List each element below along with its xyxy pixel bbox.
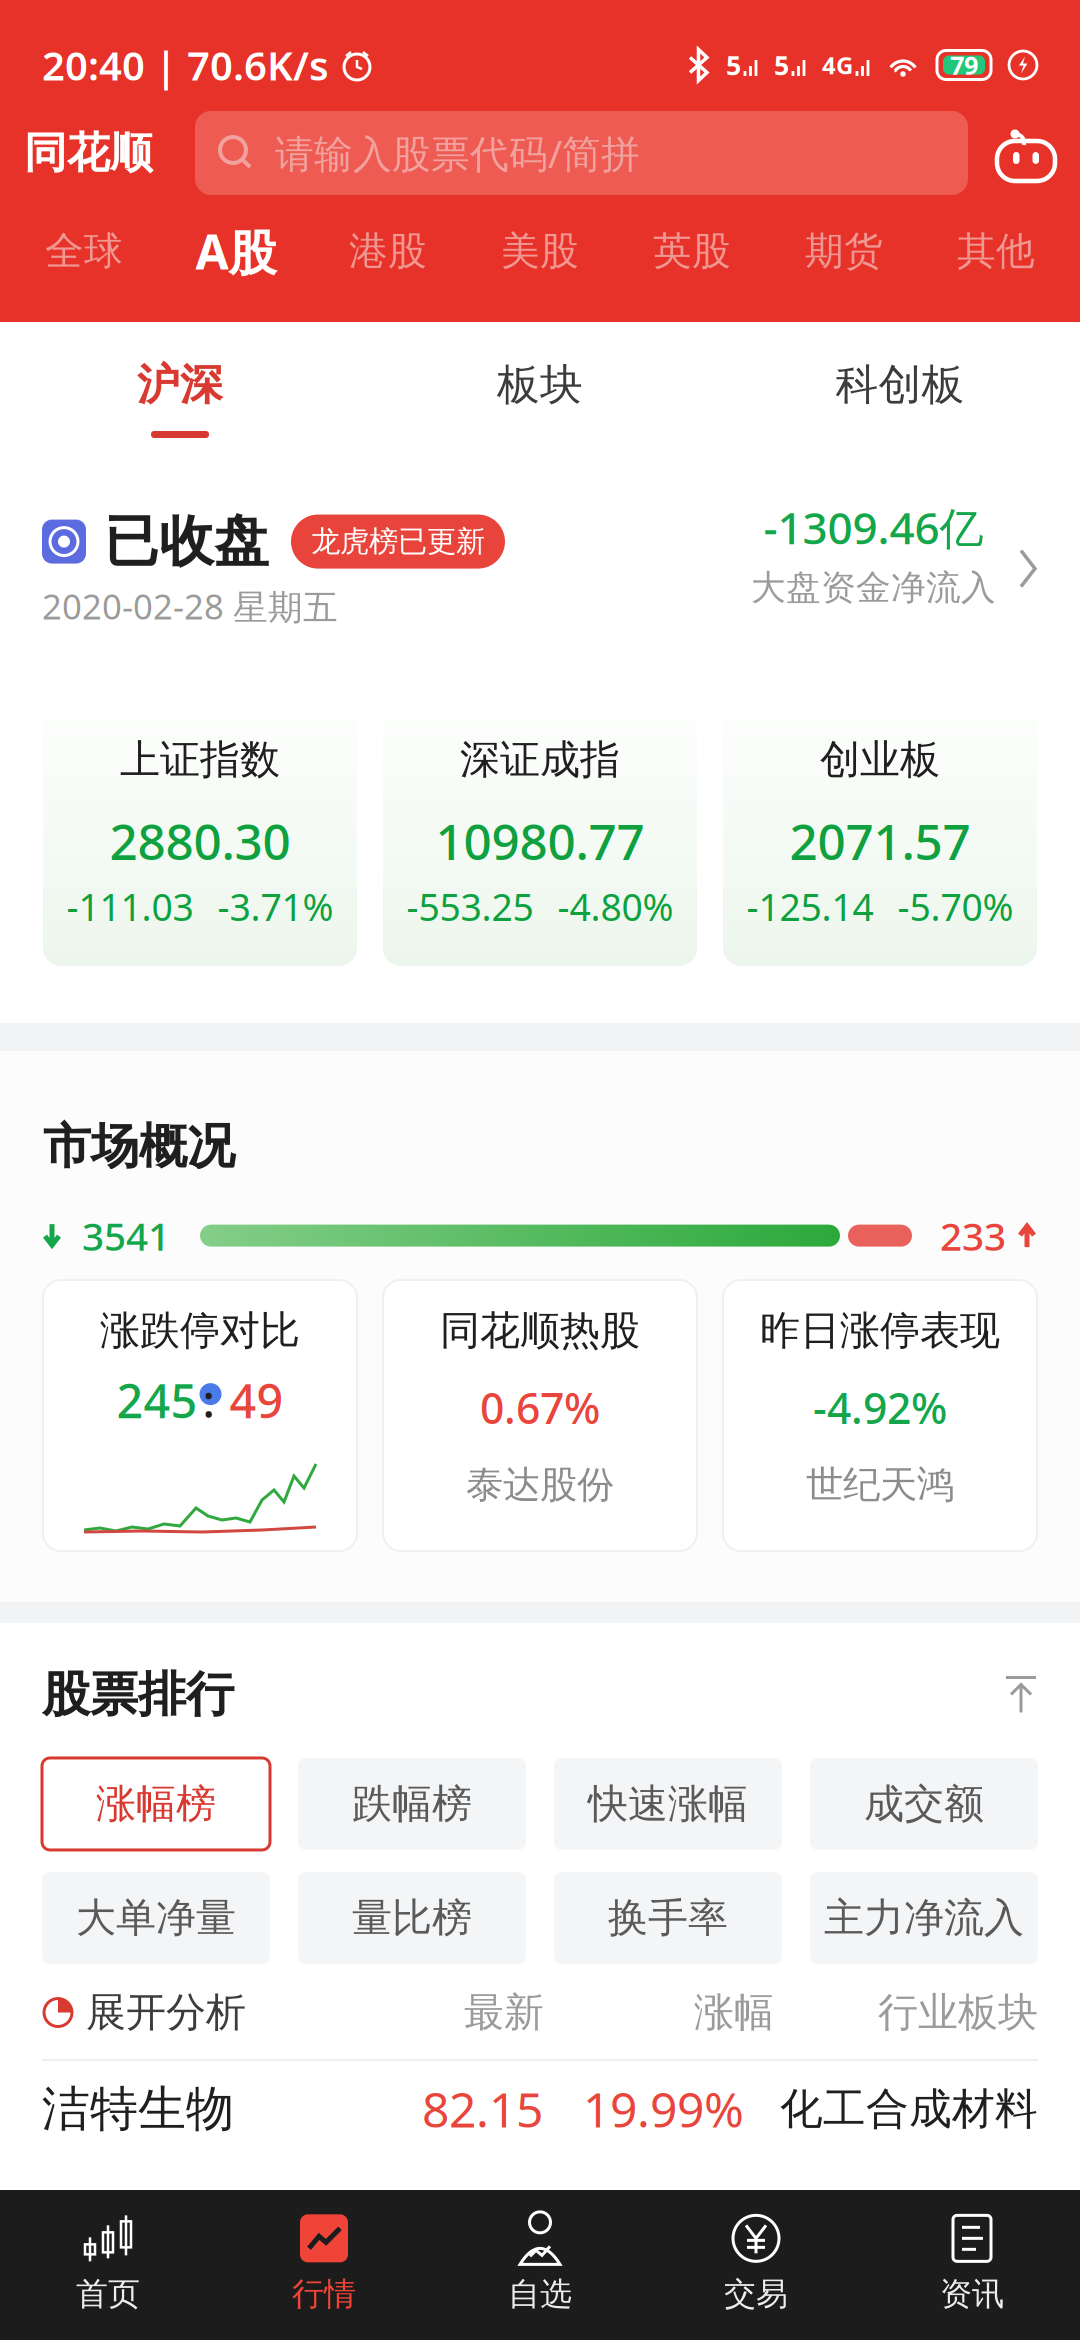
staticText: 期货 — [805, 227, 883, 275]
staticText: A股 — [195, 219, 276, 283]
staticText: 涨幅榜 — [96, 1779, 216, 1828]
button[interactable]: 量比榜 — [298, 1872, 526, 1964]
button[interactable]: 主力净流入 — [810, 1872, 1038, 1964]
staticText: 化工合成材料 — [780, 2083, 1038, 2135]
staticText: 洁特生物 — [42, 2079, 234, 2138]
staticText: 美股 — [501, 227, 579, 275]
staticText: 创业板 — [820, 735, 940, 784]
staticText: 已收盘 — [104, 508, 269, 575]
button[interactable]: 快速涨幅 — [554, 1758, 782, 1850]
staticText: 79 — [950, 48, 978, 82]
button[interactable]: 最新 — [464, 1988, 544, 2037]
staticText: 同花顺 — [24, 127, 153, 179]
staticText: 快速涨幅 — [588, 1779, 748, 1828]
staticText: -3.71% — [217, 882, 333, 931]
button[interactable]: 沪深 — [0, 322, 360, 440]
button[interactable]: 行业板块 — [878, 1988, 1038, 2037]
staticText: 同花顺热股 — [440, 1306, 640, 1355]
button[interactable]: 交易 — [648, 2190, 864, 2340]
staticText: 主力净流入 — [824, 1893, 1024, 1942]
staticText: 成交额 — [864, 1779, 984, 1828]
staticText: -5.70% — [897, 882, 1013, 931]
staticText: 全球 — [45, 227, 123, 275]
staticText: 19.99% — [583, 2077, 744, 2141]
button[interactable]: -1309.46亿 — [751, 513, 1038, 624]
staticText: 涨幅 — [694, 1988, 774, 2037]
button[interactable]: 板块 — [360, 322, 720, 440]
button[interactable]: 涨幅 — [694, 1988, 774, 2037]
button[interactable]: 科创板 — [720, 322, 1080, 440]
staticText: 82.15 — [422, 2077, 543, 2141]
staticText: 233 — [940, 1210, 1006, 1261]
staticText: 港股 — [349, 227, 427, 275]
staticText: -111.03 — [66, 882, 193, 931]
button[interactable]: 全球 — [8, 223, 160, 279]
button[interactable]: 涨跌停对比 — [43, 1280, 357, 1551]
staticText: 沪深 — [137, 359, 223, 411]
staticText: 0.67% — [480, 1379, 600, 1436]
button[interactable]: 跌幅榜 — [298, 1758, 526, 1850]
staticText: 2020-02-28 星期五 — [42, 583, 338, 629]
button[interactable]: 英股 — [616, 223, 768, 279]
staticText: -1309.46亿 — [763, 498, 983, 556]
button[interactable]: A股 — [160, 223, 312, 279]
staticText: 涨跌停对比 — [100, 1306, 300, 1355]
staticText: 展开分析 — [86, 1988, 246, 2037]
button[interactable]: 美股 — [464, 223, 616, 279]
staticText: 5 — [726, 47, 741, 83]
button[interactable]: 龙虎榜已更新 — [291, 515, 505, 569]
staticText: 龙虎榜已更新 — [311, 524, 485, 560]
staticText: 大盘资金净流入 — [751, 566, 996, 609]
staticText: 昨日涨停表现 — [760, 1306, 1000, 1355]
button[interactable]: 其他 — [920, 223, 1072, 279]
staticText: 49 — [229, 1369, 283, 1431]
button[interactable]: 首页 — [0, 2190, 216, 2340]
staticText: 泰达股份 — [466, 1462, 614, 1508]
staticText: 行业板块 — [878, 1988, 1038, 2037]
button[interactable]: 昨日涨停表现 — [723, 1280, 1037, 1551]
staticText: 最新 — [464, 1988, 544, 2037]
staticText: 交易 — [724, 2274, 788, 2314]
staticText: 其他 — [957, 227, 1035, 275]
staticText: 深证成指 — [460, 735, 620, 784]
button[interactable]: 涨幅榜 — [42, 1758, 270, 1850]
button[interactable]: 换手率 — [554, 1872, 782, 1964]
staticText: 上证指数 — [120, 735, 280, 784]
staticText: -553.25 — [406, 882, 533, 931]
staticText: 市场概况 — [43, 1117, 235, 1176]
staticText: 行情 — [292, 2274, 356, 2314]
staticText: 股票排行 — [42, 1665, 234, 1724]
button[interactable]: 期货 — [768, 223, 920, 279]
button[interactable]: 行情 — [216, 2190, 432, 2340]
staticText: 2071.57 — [789, 808, 970, 874]
staticText: 3541 — [82, 1210, 170, 1261]
staticText: 4G — [822, 49, 853, 81]
staticText: 大单净量 — [76, 1893, 236, 1942]
staticText: 科创板 — [835, 359, 964, 411]
button[interactable]: 智能助手 — [994, 124, 1058, 182]
staticText: 世纪天鸿 — [806, 1462, 954, 1508]
button[interactable]: 请输入股票代码/简拼 — [195, 111, 968, 195]
staticText: 20:40 | 70.6K/s — [42, 38, 329, 91]
staticText: 5 — [774, 47, 789, 83]
staticText: 板块 — [497, 359, 583, 411]
button[interactable]: 展开分析 — [42, 1988, 246, 2037]
staticText: 首页 — [76, 2274, 140, 2314]
staticText: -4.92% — [813, 1379, 947, 1436]
staticText: 跌幅榜 — [352, 1779, 472, 1828]
button[interactable]: 成交额 — [810, 1758, 1038, 1850]
button[interactable]: 深证成指 — [383, 683, 697, 966]
button[interactable]: 上证指数 — [43, 683, 357, 966]
button[interactable]: 自选 — [432, 2190, 648, 2340]
button[interactable]: 港股 — [312, 223, 464, 279]
button[interactable]: 大单净量 — [42, 1872, 270, 1964]
button[interactable]: 同花顺热股 — [383, 1280, 697, 1551]
staticText: 自选 — [508, 2274, 572, 2314]
button[interactable]: 资讯 — [864, 2190, 1080, 2340]
staticText: 2880.30 — [109, 808, 290, 874]
button[interactable]: 创业板 — [723, 683, 1037, 966]
button[interactable]: 收起 — [1004, 1674, 1038, 1714]
staticText: : — [202, 1370, 214, 1430]
staticText: -4.80% — [557, 882, 673, 931]
staticText: -125.14 — [746, 882, 873, 931]
